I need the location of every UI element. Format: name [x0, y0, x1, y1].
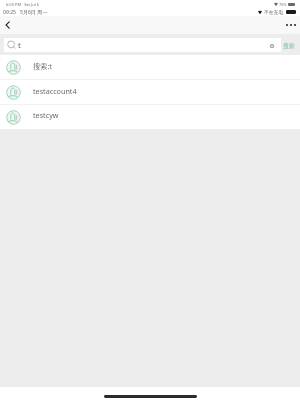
staticText: 不在充电	[264, 9, 284, 15]
staticText: testcyw	[33, 110, 59, 120]
button[interactable]: 搜索	[278, 39, 300, 52]
button[interactable]: 搜索:t	[0, 55, 300, 80]
staticText: testaccount4	[33, 86, 77, 96]
button[interactable]: More options	[284, 19, 298, 31]
staticText: 09:25 5月6日 周一	[3, 9, 48, 16]
button[interactable]: testaccount4	[0, 80, 300, 105]
staticText: t	[18, 40, 21, 50]
staticText: 76%	[279, 2, 287, 7]
staticText: 6:00 PM Sat Jul 6	[6, 2, 39, 7]
staticText: 搜索:t	[33, 61, 52, 71]
button[interactable]: Clear text	[267, 41, 276, 50]
button[interactable]: testcyw	[0, 105, 300, 129]
button[interactable]: Back	[0, 16, 15, 34]
staticText: 搜索	[283, 42, 295, 49]
button[interactable]: t	[4, 38, 281, 52]
